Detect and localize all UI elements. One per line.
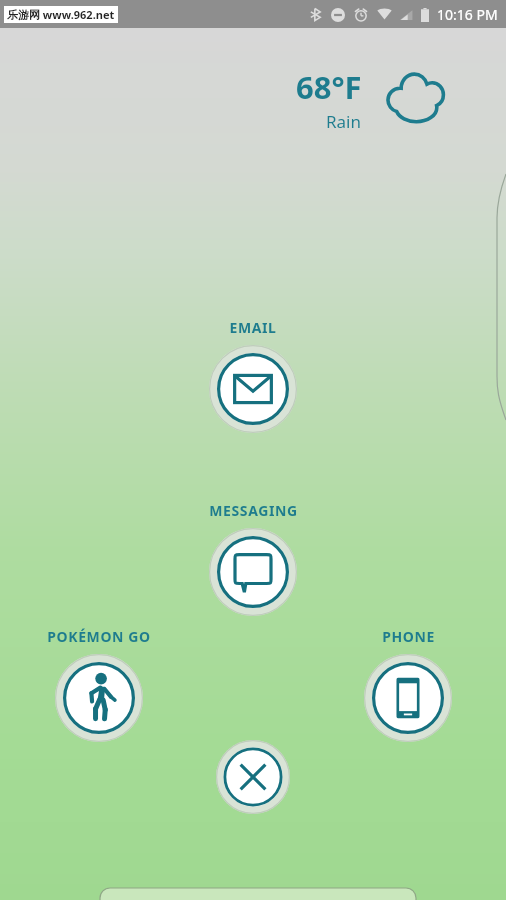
button[interactable]: Weather, 68 degrees Fahrenheit, Rain [296, 66, 450, 133]
staticText: 乐游网 www.962.net [7, 7, 115, 22]
staticText: 68°F [296, 66, 362, 108]
button[interactable]: PHONE [316, 627, 500, 742]
button[interactable]: Close [216, 740, 290, 814]
staticText: POKÉMON GO [47, 627, 151, 646]
staticText: 10:16 PM [437, 5, 498, 24]
staticText: Rain [326, 110, 362, 133]
staticText: EMAIL [229, 318, 277, 337]
button[interactable]: MESSAGING [161, 501, 345, 616]
button[interactable]: POKÉMON GO [7, 627, 191, 742]
staticText: PHONE [382, 627, 435, 646]
button[interactable] [100, 888, 416, 900]
staticText: MESSAGING [209, 501, 298, 520]
button[interactable]: EMAIL [161, 318, 345, 433]
